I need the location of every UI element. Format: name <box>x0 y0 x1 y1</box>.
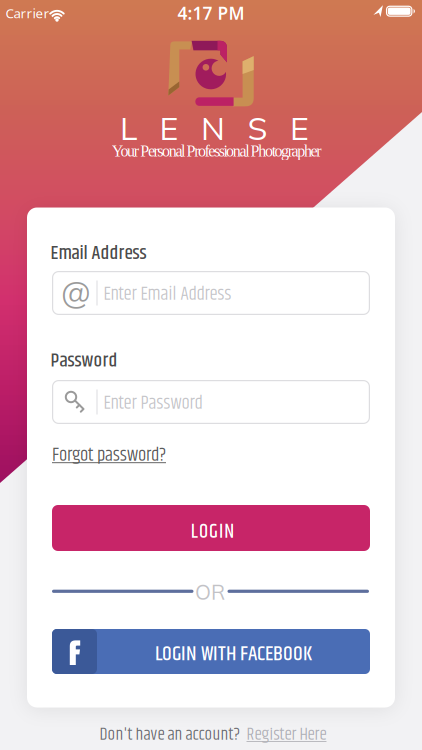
staticText: @ <box>61 273 91 312</box>
button[interactable]: Forgot password? <box>52 441 166 470</box>
staticText: 4:17 PM <box>177 1 244 24</box>
staticText: Enter Password <box>103 389 202 418</box>
button[interactable]: Register Here <box>246 722 326 748</box>
button[interactable]: LOGIN <box>52 505 370 551</box>
staticText: Forgot password? <box>52 441 166 470</box>
staticText: Your Personal Professional Photographer <box>112 142 321 160</box>
staticText: Enter Email Address <box>103 280 231 309</box>
button[interactable]: Email Address <box>52 271 370 315</box>
staticText: LOGIN WITH FACEBOOK <box>155 638 312 670</box>
staticText: Email Address <box>50 239 146 268</box>
staticText: Password <box>50 346 117 376</box>
staticText: Don't have an account? <box>99 722 239 748</box>
staticText: LOGIN <box>191 517 234 547</box>
staticText: LENSE <box>120 108 309 148</box>
button[interactable]: LOGIN WITH FACEBOOK <box>52 629 370 674</box>
staticText: Register Here <box>246 722 326 748</box>
staticText: OR <box>195 579 225 605</box>
button[interactable]: Password <box>52 380 370 424</box>
staticText: Carrier <box>5 4 49 22</box>
